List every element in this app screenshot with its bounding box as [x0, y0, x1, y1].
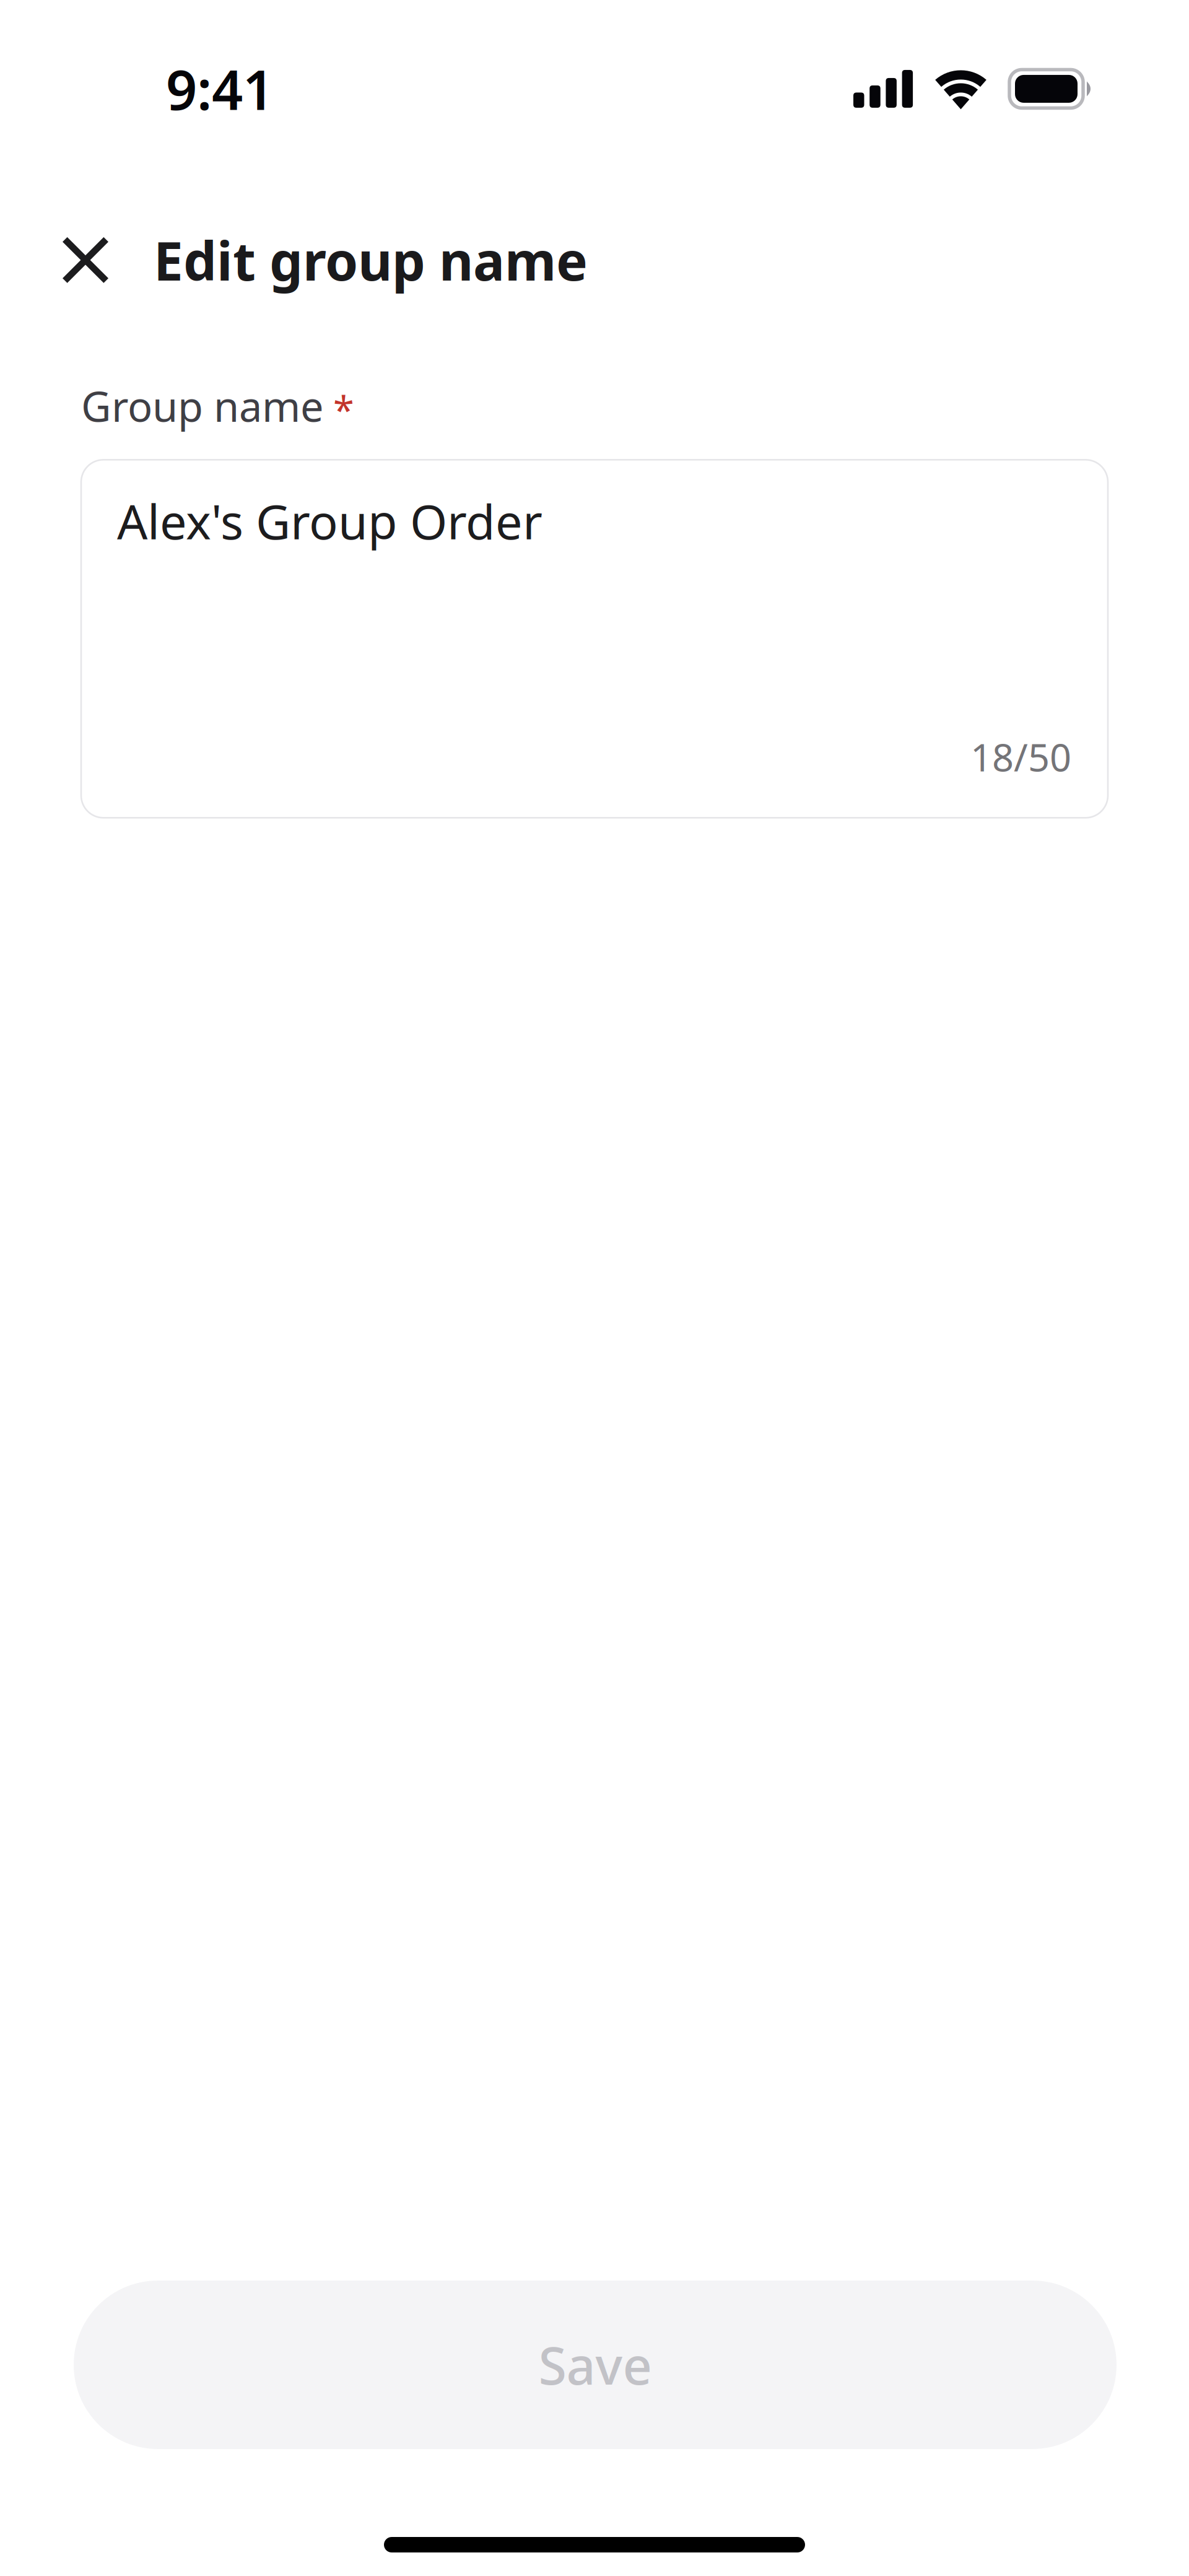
- staticText: Group name: [81, 378, 324, 433]
- staticText: 9:41: [166, 53, 274, 125]
- button[interactable]: Save: [74, 2281, 1117, 2449]
- button[interactable]: Edit group name: [154, 224, 588, 297]
- staticText: Edit group name: [154, 225, 588, 295]
- staticText: Alex's Group Order: [117, 489, 542, 552]
- staticText: *: [333, 384, 354, 434]
- staticText: 18/50: [970, 731, 1071, 782]
- button[interactable]: Close: [63, 224, 154, 297]
- staticText: Save: [538, 2331, 652, 2399]
